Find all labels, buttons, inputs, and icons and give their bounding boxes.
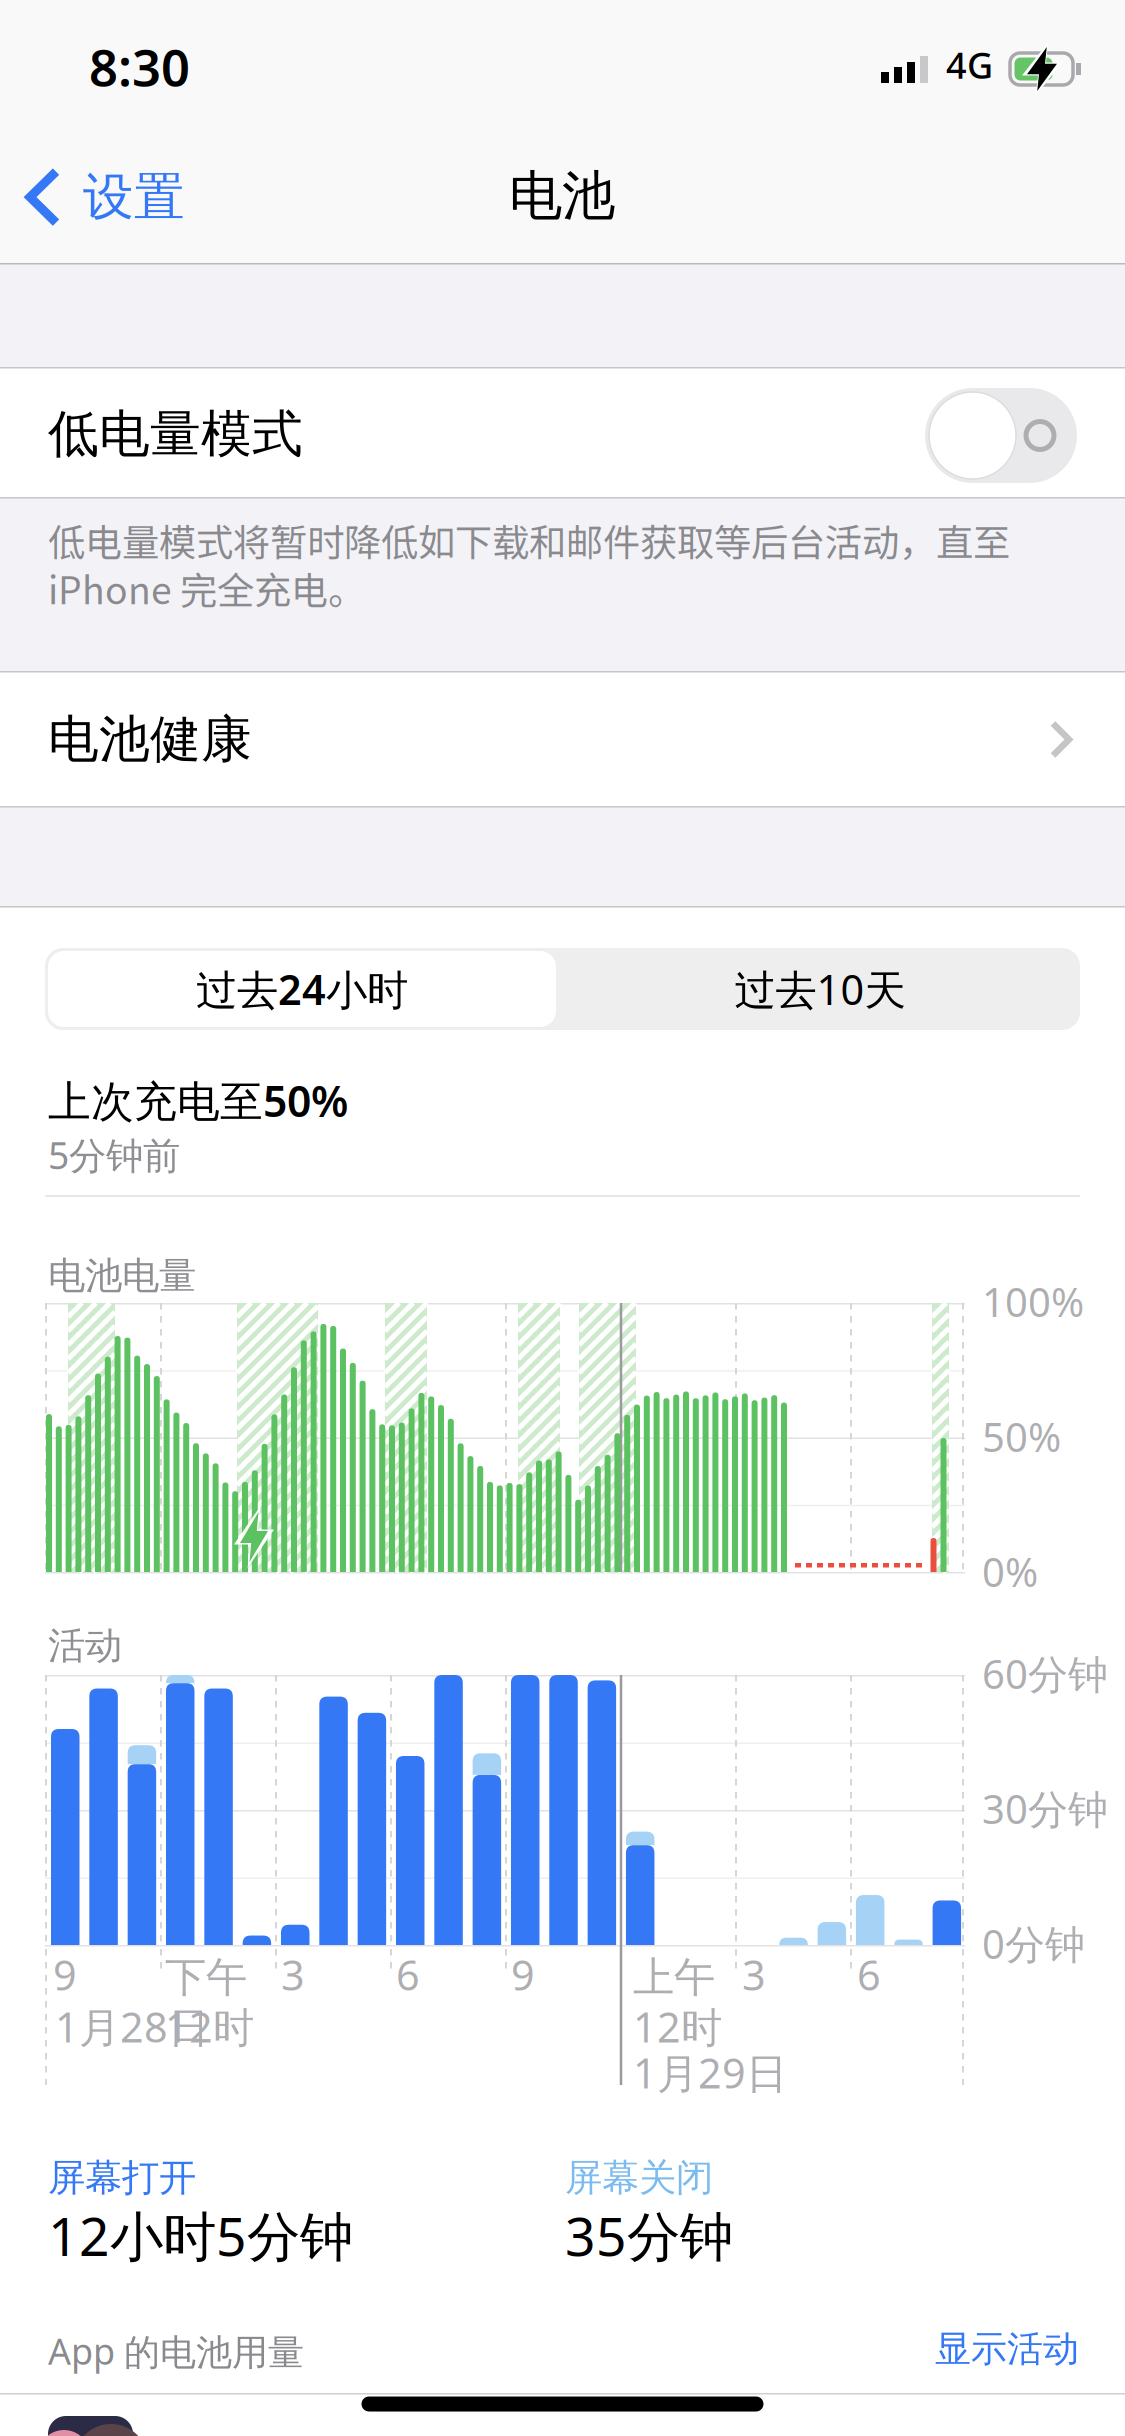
staticText: 过去10天 <box>734 962 905 1016</box>
staticText: 屏幕打开 <box>48 2155 196 2201</box>
staticText: 电池 <box>509 163 615 229</box>
staticText: 9 <box>53 1947 77 2002</box>
staticText: 9 <box>511 1947 535 2002</box>
staticText: iPhone 完全充电。 <box>48 561 365 615</box>
staticText: 60分钟 <box>982 1647 1108 1700</box>
staticText: 12小时5分钟 <box>48 2200 353 2271</box>
staticText: 3 <box>281 1947 305 2002</box>
staticText: 12时 <box>633 1999 722 2054</box>
staticText: 低电量模式 <box>48 403 303 465</box>
staticText: 6 <box>396 1947 420 2002</box>
staticText: 上次充电至50% <box>48 1072 348 1129</box>
staticText: 6 <box>857 1947 881 2002</box>
staticText: 1月28日 <box>55 1999 209 2054</box>
staticText: 12时 <box>165 1999 254 2054</box>
staticText: 0% <box>982 1545 1038 1598</box>
staticText: 电池电量 <box>48 1253 196 1299</box>
staticText: 5分钟前 <box>48 1130 180 1180</box>
button[interactable]: 过去24小时 <box>46 948 558 1030</box>
staticText: 4G <box>946 41 993 89</box>
button[interactable]: 低电量模式 <box>925 388 1077 483</box>
staticText: 低电量模式将暂时降低如下载和邮件获取等后台活动，直至 <box>48 513 1010 567</box>
button[interactable]: 显示活动 <box>935 2327 1079 2371</box>
staticText: 30分钟 <box>982 1782 1108 1835</box>
staticText: 下午 <box>165 1952 247 2003</box>
button[interactable]: 过去10天 <box>562 948 1078 1030</box>
staticText: 活动 <box>48 1623 122 1669</box>
staticText: 50% <box>982 1410 1061 1463</box>
staticText: 8:30 <box>89 33 190 100</box>
staticText: 屏幕关闭 <box>565 2155 713 2201</box>
staticText: 电池健康 <box>48 708 252 771</box>
staticText: 设置 <box>83 166 185 228</box>
button[interactable]: 电池健康 <box>0 673 1125 806</box>
button[interactable]: App 电池用量条目 <box>48 2416 133 2436</box>
staticText: App 的电池用量 <box>48 2327 304 2375</box>
staticText: 上午 <box>633 1952 715 2003</box>
staticText: 过去24小时 <box>196 962 408 1016</box>
staticText: 35分钟 <box>565 2200 733 2271</box>
staticText: 显示活动 <box>935 2327 1079 2371</box>
button[interactable]: 设置 <box>25 166 185 228</box>
staticText: 1月29日 <box>633 2045 787 2100</box>
staticText: 0分钟 <box>982 1917 1085 1970</box>
staticText: 3 <box>742 1947 766 2002</box>
staticText: 100% <box>982 1275 1084 1328</box>
